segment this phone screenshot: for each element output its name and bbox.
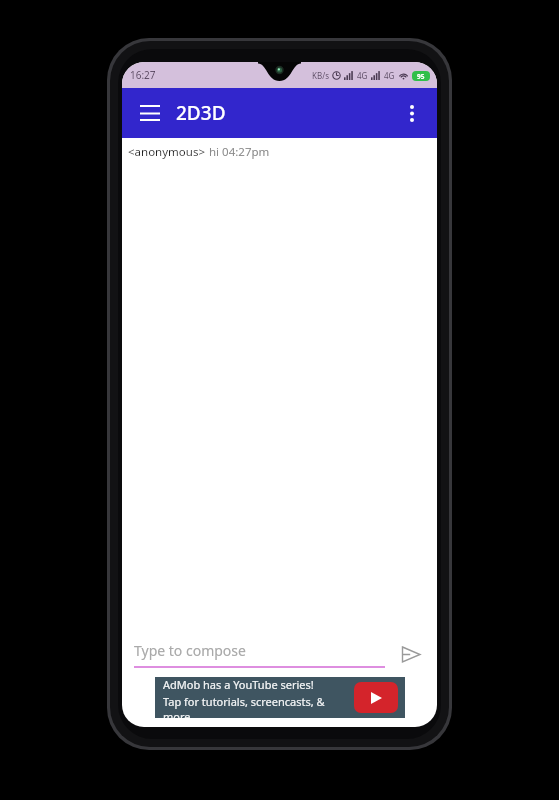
- staticText: Tap for tutorials, screencasts, & more.: [163, 694, 354, 718]
- staticText: KB/s: [312, 70, 329, 81]
- button[interactable]: More options: [393, 94, 431, 132]
- staticText: 2D3D: [176, 100, 226, 126]
- button[interactable]: Type to compose: [134, 641, 385, 668]
- staticText: hi 04:27pm: [209, 144, 270, 160]
- button[interactable]: <anonymous>: [128, 144, 270, 160]
- staticText: 95: [417, 72, 425, 81]
- button[interactable]: Open navigation menu: [130, 93, 170, 133]
- staticText: 4G: [384, 70, 395, 81]
- staticText: Type to compose: [134, 641, 246, 660]
- button[interactable]: AdMob has a YouTube series!: [155, 677, 405, 718]
- button[interactable]: Send message: [395, 638, 427, 670]
- staticText: 4G: [357, 70, 368, 81]
- staticText: <anonymous>: [128, 144, 205, 160]
- staticText: AdMob has a YouTube series!: [163, 677, 314, 692]
- staticText: 16:27: [130, 68, 156, 82]
